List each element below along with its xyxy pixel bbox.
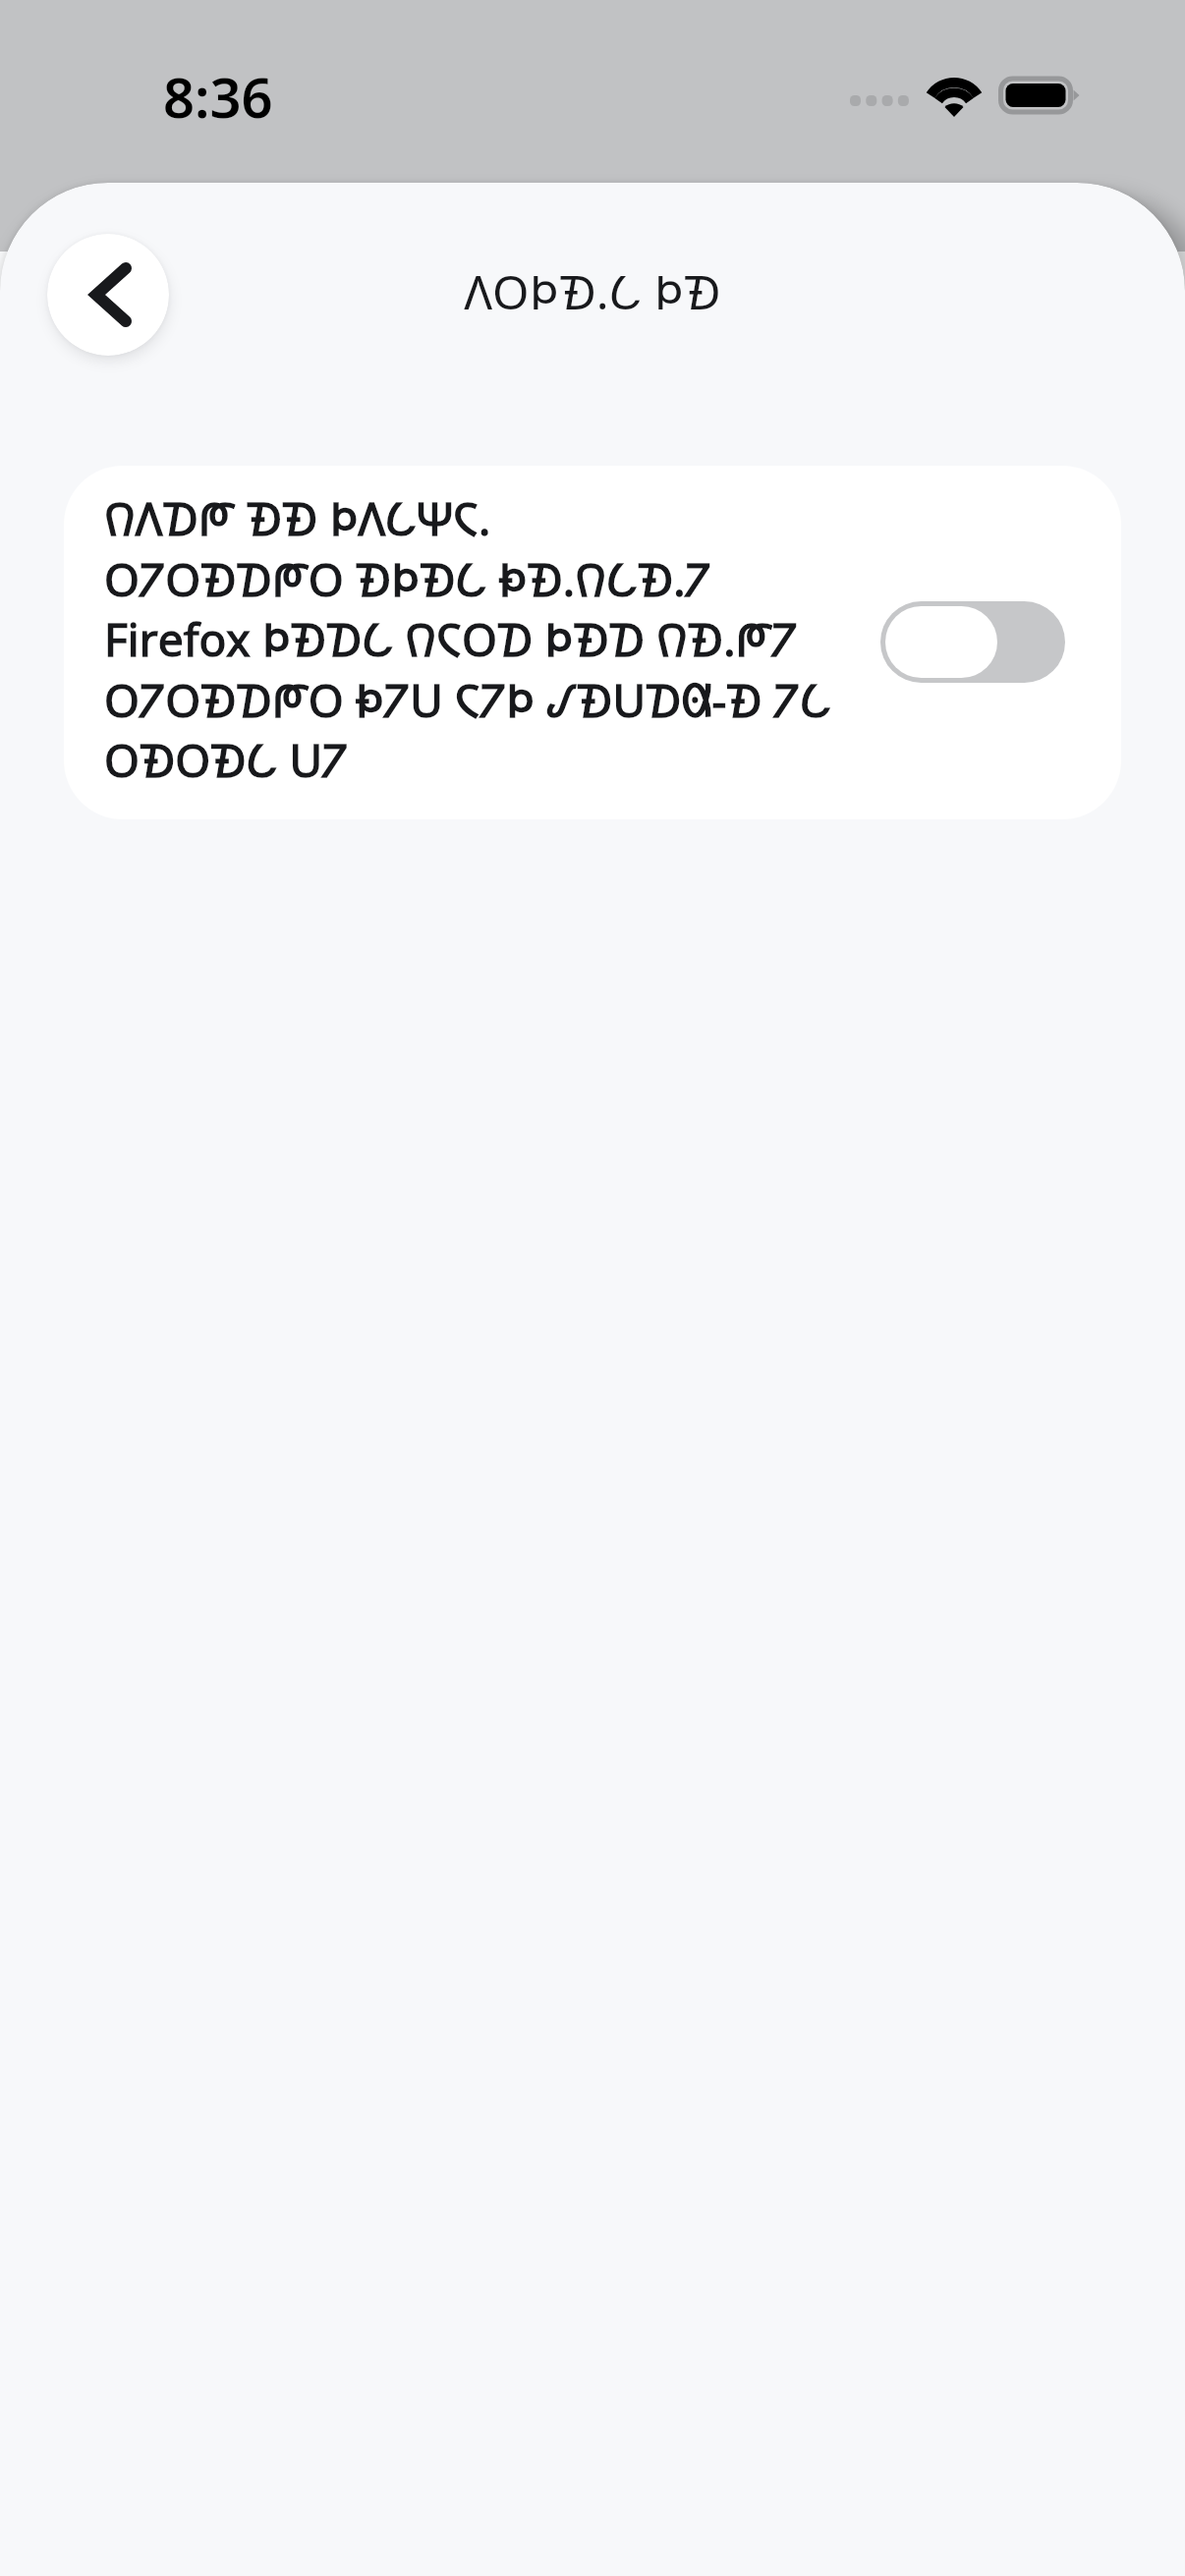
staticText: Firefox 𐓄𐓉𐓈𐒿 𐒻𐓆𐓂𐓈 𐓄𐓉𐓈 𐒻𐓉.𐓀𐓒: [104, 608, 798, 670]
button[interactable]: Back: [47, 234, 169, 356]
staticText: 𐓂𐓒𐓂𐓉𐓈𐓀𐓂 𐓉𐓄𐓉𐒿 𐓅𐓉.𐒻𐒿𐓉.𐓒: [104, 548, 711, 610]
staticText: 𐓂𐓒𐓂𐓉𐓈𐓀𐓂 𐓅𐓒𐓎 𐓆𐓒𐓄 𐒹𐓉𐓎𐓈𐒸-𐓉 𐓒𐒿: [104, 669, 831, 731]
staticText: 𐒰𐓂𐓄𐓉.𐒿 𐓄𐓉: [464, 259, 721, 323]
staticText: 𐒻𐒰𐓈𐓀 𐓉𐓉 𐓄𐒰𐒿𐓑𐓆.: [104, 487, 491, 549]
staticText: 8:36: [163, 59, 273, 134]
button[interactable]: 𐒻𐒰𐓈𐓀 𐓉𐓉 𐓄𐒰𐒿𐓑𐓆.: [64, 466, 1121, 819]
button[interactable]: Toggle setting: [880, 601, 1065, 683]
staticText: 𐓂𐓉𐓂𐓉𐒿 𐓎𐓒: [104, 729, 349, 791]
